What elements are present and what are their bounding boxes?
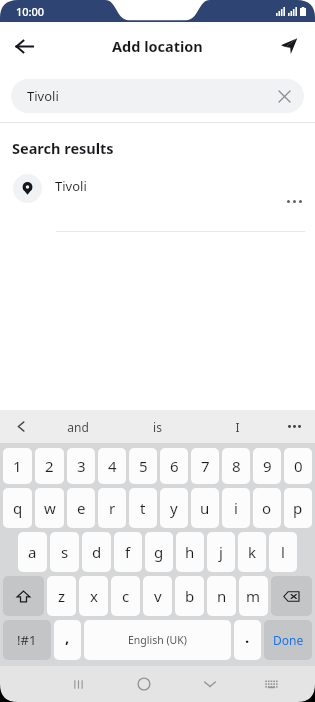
staticText: m	[246, 586, 261, 606]
staticText: a	[28, 542, 37, 562]
button[interactable]: More suggestions	[277, 410, 311, 443]
button[interactable]: .	[234, 620, 261, 660]
staticText: ,	[65, 627, 70, 647]
staticText: English (UK)	[128, 633, 187, 647]
staticText: 9	[263, 456, 272, 476]
button[interactable]: e	[67, 488, 95, 528]
staticText: g	[154, 542, 164, 562]
staticText: x	[90, 586, 98, 606]
button[interactable]: 0	[284, 448, 312, 484]
button[interactable]: m	[239, 576, 268, 616]
button[interactable]: !#1	[3, 620, 51, 660]
button[interactable]: English (UK)	[84, 620, 231, 660]
button[interactable]: ,	[54, 620, 81, 660]
button[interactable]: Change keyboard	[243, 666, 299, 702]
button[interactable]: 9	[253, 448, 281, 484]
button[interactable]: 6	[160, 448, 188, 484]
button[interactable]: 2	[35, 448, 64, 484]
button[interactable]: v	[143, 576, 172, 616]
staticText: z	[58, 586, 66, 606]
staticText: Tivoli	[55, 177, 87, 195]
staticText: and	[67, 419, 89, 435]
staticText: c	[122, 586, 130, 606]
staticText: Tivoli	[27, 87, 59, 105]
button[interactable]: z	[47, 576, 76, 616]
button[interactable]: 5	[129, 448, 157, 484]
button[interactable]: w	[35, 488, 64, 528]
button[interactable]: Recents	[45, 666, 111, 702]
button[interactable]: y	[160, 488, 188, 528]
button[interactable]: 4	[98, 448, 126, 484]
button[interactable]: f	[114, 532, 142, 572]
button[interactable]: k	[238, 532, 266, 572]
button[interactable]: r	[98, 488, 126, 528]
staticText: t	[140, 498, 146, 518]
button[interactable]: g	[145, 532, 173, 572]
button[interactable]: More options	[277, 184, 311, 218]
staticText: o	[262, 498, 272, 518]
button[interactable]: j	[207, 532, 235, 572]
button[interactable]: 3	[67, 448, 95, 484]
staticText: v	[154, 586, 162, 606]
button[interactable]: Back	[4, 26, 44, 66]
staticText: j	[219, 542, 223, 562]
staticText: 7	[201, 456, 210, 476]
button[interactable]: d	[82, 532, 111, 572]
staticText: Add location	[112, 36, 203, 56]
button[interactable]: n	[207, 576, 236, 616]
button[interactable]: Home	[111, 666, 177, 702]
button[interactable]: h	[176, 532, 204, 572]
staticText: I	[235, 419, 240, 435]
staticText: is	[153, 419, 162, 435]
button[interactable]: a	[18, 532, 47, 572]
button[interactable]: i	[222, 488, 250, 528]
staticText: u	[200, 498, 210, 518]
button[interactable]: u	[191, 488, 219, 528]
button[interactable]: s	[50, 532, 79, 572]
button[interactable]: 1	[3, 448, 32, 484]
button[interactable]: Done	[264, 620, 312, 660]
staticText: q	[13, 498, 23, 518]
staticText: 4	[108, 456, 117, 476]
staticText: Done	[273, 632, 304, 648]
button[interactable]: c	[111, 576, 140, 616]
button[interactable]: 8	[222, 448, 250, 484]
staticText: 2	[45, 456, 54, 476]
staticText: w	[44, 498, 56, 518]
staticText: 6	[170, 456, 179, 476]
staticText: !#1	[17, 631, 37, 649]
button[interactable]: Tivoli	[11, 79, 304, 113]
staticText: h	[185, 542, 195, 562]
staticText: Search results	[12, 138, 114, 158]
button[interactable]: Backspace	[271, 576, 312, 616]
button[interactable]: Hide keyboard	[177, 666, 243, 702]
staticText: f	[125, 542, 131, 562]
staticText: s	[61, 542, 69, 562]
staticText: 8	[232, 456, 241, 476]
staticText: 5	[139, 456, 148, 476]
button[interactable]: Shift	[3, 576, 44, 616]
button[interactable]: b	[175, 576, 204, 616]
button[interactable]: and	[38, 410, 117, 443]
button[interactable]: is	[117, 410, 197, 443]
button[interactable]: Clear search	[270, 82, 298, 110]
button[interactable]: q	[3, 488, 32, 528]
button[interactable]: t	[129, 488, 157, 528]
staticText: e	[77, 498, 86, 518]
button[interactable]: Tivoli	[0, 158, 315, 232]
button[interactable]: p	[284, 488, 312, 528]
button[interactable]: Use current location	[269, 26, 309, 66]
button[interactable]: x	[79, 576, 108, 616]
button[interactable]: I	[197, 410, 277, 443]
button[interactable]: l	[269, 532, 297, 572]
button[interactable]: o	[253, 488, 281, 528]
staticText: y	[170, 498, 178, 518]
staticText: 10:00	[16, 4, 45, 19]
staticText: b	[185, 586, 195, 606]
staticText: 0	[294, 456, 303, 476]
staticText: k	[248, 542, 257, 562]
button[interactable]: Previous suggestions	[4, 410, 38, 443]
button[interactable]: 7	[191, 448, 219, 484]
staticText: 1	[13, 456, 22, 476]
staticText: d	[92, 542, 102, 562]
